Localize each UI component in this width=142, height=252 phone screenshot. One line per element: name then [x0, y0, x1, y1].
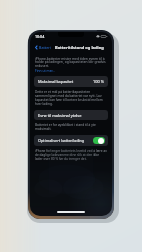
staticText: Maksimal kapasitet — [38, 79, 74, 84]
staticText: Batteriet er for øyeblikket i stand til … — [35, 123, 107, 131]
staticText: Dette er et mål på batterikapasiteten sa… — [35, 90, 107, 106]
staticText: 10:04 — [35, 34, 45, 39]
button[interactable]: Evne til maksimal ytelse — [34, 110, 108, 120]
staticText: 100 % — [93, 79, 104, 84]
staticText: Batteri — [39, 45, 51, 50]
staticText: Batteritilstand og lading — [55, 45, 104, 50]
button[interactable]: Batteri — [34, 44, 52, 51]
button[interactable]: Finn ut mer… — [35, 68, 55, 72]
button[interactable]: Optimalisert batterilading — [34, 135, 108, 146]
staticText: iPhone-batterier mister med tiden evnen … — [35, 56, 107, 68]
staticText: iPhone forlenger batteriets levetid ved … — [35, 149, 107, 161]
staticText: Evne til maksimal ytelse — [38, 113, 82, 118]
button[interactable]: Maksimal kapasitet — [34, 76, 108, 87]
button[interactable]: Optimalisert batterilading på — [93, 137, 105, 144]
staticText: Optimalisert batterilading — [38, 138, 85, 143]
